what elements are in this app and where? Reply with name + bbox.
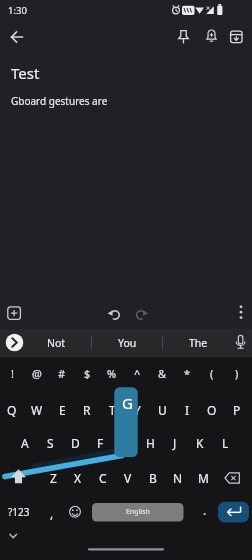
button[interactable]: ^ [125, 362, 149, 384]
button[interactable]: & [150, 362, 174, 384]
button[interactable]: H [138, 428, 162, 458]
button[interactable]: $ [75, 362, 99, 384]
button[interactable]: ( [200, 362, 224, 384]
button[interactable]: O [200, 395, 224, 425]
staticText: V [124, 470, 132, 486]
staticText: O [207, 402, 217, 418]
staticText: Q [7, 402, 17, 418]
staticText: $ [84, 366, 91, 381]
button[interactable] [4, 332, 25, 353]
staticText: A [21, 435, 29, 451]
button[interactable]: W [25, 395, 49, 425]
staticText: 1:30 [8, 4, 27, 17]
staticText: R [83, 402, 91, 418]
staticText: The [189, 336, 208, 350]
staticText: Test [11, 63, 40, 83]
button[interactable]: Q [0, 395, 24, 425]
button[interactable]: M [191, 463, 215, 493]
button[interactable] [226, 26, 247, 48]
staticText: ( [210, 366, 214, 381]
staticText: English [126, 507, 150, 517]
button[interactable]: Y [125, 395, 149, 425]
button[interactable]: R [75, 395, 99, 425]
staticText: ) [235, 366, 239, 381]
button[interactable] [3, 302, 25, 324]
staticText: * [184, 366, 191, 381]
button[interactable]: . [195, 498, 215, 522]
staticText: Z [50, 470, 57, 486]
staticText: Gboard gestures are [11, 94, 108, 108]
button[interactable] [201, 26, 222, 48]
staticText: B [149, 470, 157, 486]
staticText: M [198, 470, 209, 486]
staticText: ?123 [8, 505, 30, 519]
button[interactable]: K [188, 428, 212, 458]
staticText: N [173, 470, 183, 486]
button[interactable]: V [116, 463, 140, 493]
button[interactable]: G [113, 428, 137, 458]
button[interactable]: U [150, 395, 174, 425]
button[interactable]: # [50, 362, 74, 384]
staticText: K [196, 435, 204, 451]
staticText: # [58, 366, 66, 381]
staticText: % [107, 366, 117, 381]
button[interactable] [6, 26, 28, 48]
button[interactable]: You [99, 328, 155, 358]
button[interactable] [218, 501, 249, 522]
button[interactable] [4, 527, 23, 545]
button[interactable]: D [63, 428, 87, 458]
button[interactable]: P [225, 395, 249, 425]
staticText: Y [134, 402, 141, 418]
staticText: L [222, 435, 229, 451]
button[interactable]: The [170, 328, 226, 358]
staticText: & [158, 366, 167, 381]
button[interactable]: J [163, 428, 187, 458]
staticText: U [158, 402, 167, 418]
staticText: E [59, 402, 66, 418]
button[interactable]: ! [0, 362, 24, 384]
button[interactable] [102, 301, 124, 323]
button[interactable]: B [141, 463, 165, 493]
button[interactable]: @ [25, 362, 49, 384]
staticText: . [203, 502, 207, 518]
staticText: ! [11, 366, 14, 381]
button[interactable] [7, 465, 31, 491]
button[interactable]: Not [28, 328, 84, 358]
button[interactable]: ) [225, 362, 249, 384]
staticText: T [109, 402, 116, 418]
button[interactable]: S [38, 428, 62, 458]
staticText: D [71, 435, 80, 451]
button[interactable]: , [42, 501, 62, 525]
staticText: F [97, 435, 104, 451]
button[interactable] [92, 503, 184, 522]
staticText: You [118, 336, 137, 350]
button[interactable]: I [175, 395, 199, 425]
button[interactable]: % [100, 362, 124, 384]
button[interactable]: * [175, 362, 199, 384]
button[interactable] [64, 500, 86, 524]
button[interactable] [220, 465, 246, 491]
button[interactable]: N [166, 463, 190, 493]
staticText: P [233, 402, 241, 418]
button[interactable]: L [213, 428, 237, 458]
button[interactable] [230, 301, 252, 323]
button[interactable]: A [13, 428, 37, 458]
button[interactable] [129, 301, 151, 323]
button[interactable]: X [66, 463, 90, 493]
staticText: Not [47, 336, 66, 350]
staticText: J [173, 435, 177, 451]
button[interactable] [173, 26, 194, 48]
staticText: X [74, 470, 82, 486]
button[interactable]: T [100, 395, 124, 425]
button[interactable]: ?123 [2, 500, 36, 524]
button[interactable]: Z [41, 463, 65, 493]
staticText: W [31, 402, 43, 418]
button[interactable]: E [50, 395, 74, 425]
button[interactable]: F [88, 428, 112, 458]
button[interactable]: C [91, 463, 115, 493]
staticText: G [122, 393, 133, 413]
button[interactable] [229, 332, 251, 353]
staticText: @ [32, 366, 42, 381]
staticText: ^ [134, 366, 141, 381]
